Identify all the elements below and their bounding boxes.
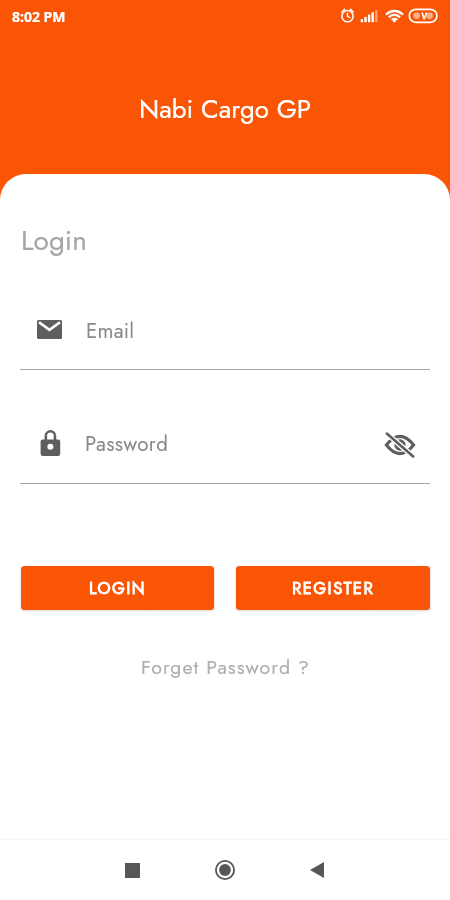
staticText: 8:02 PM (12, 7, 66, 26)
button[interactable]: LOGIN (21, 566, 214, 610)
button[interactable]: Home (208, 853, 242, 887)
staticText: Email (86, 316, 135, 346)
button[interactable]: Recent apps (117, 855, 147, 885)
button[interactable]: Back (302, 855, 332, 885)
button[interactable]: Show password (382, 427, 418, 463)
staticText: REGISTER (292, 576, 375, 600)
staticText: Password (85, 429, 169, 459)
staticText: Forget Password ? (141, 653, 310, 681)
staticText: Login (21, 220, 87, 260)
button[interactable]: REGISTER (236, 566, 430, 610)
button[interactable]: Forget Password ? (133, 650, 318, 684)
staticText: Nabi Cargo GP (139, 90, 312, 128)
staticText: LOGIN (89, 576, 147, 600)
